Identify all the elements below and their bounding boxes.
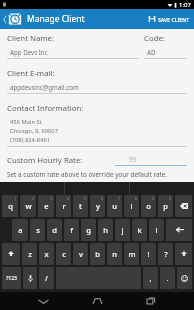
button[interactable]: b [90,243,105,265]
button[interactable]: Shift [2,243,20,265]
button[interactable]: d [47,219,62,241]
staticText: . [166,273,169,283]
staticText: 4 [67,196,70,201]
button[interactable]: ? [158,243,173,265]
button[interactable]: / [39,267,54,289]
staticText: Contact Information: [7,103,84,114]
button[interactable]: Shift [175,243,192,265]
staticText: 9 [152,196,155,201]
button[interactable]: z [22,243,37,265]
staticText: Custom Hourly Rate: [7,155,83,166]
staticText: (708) 824-8461 [10,136,51,144]
button[interactable]: v [73,243,88,265]
staticText: 5 [84,196,87,201]
button[interactable]: SAVE CLIENT [144,9,194,29]
button[interactable]: Voice input [23,267,37,289]
staticText: r [62,201,66,211]
button[interactable]: n [107,243,122,265]
staticText: c [62,249,66,259]
staticText: z [28,249,32,259]
staticText: f [70,225,73,235]
button[interactable]: a [12,219,28,241]
staticText: 2 [32,196,35,201]
button[interactable] [64,182,129,194]
button[interactable]: l [149,219,164,241]
staticText: g [86,225,91,235]
button[interactable]: f [64,219,79,241]
staticText: 99 [129,155,187,163]
staticText: i [130,201,133,211]
button[interactable]: i [124,195,139,217]
staticText: e [44,201,49,211]
staticText: Set a custom rate above to override your… [7,170,168,179]
staticText: 0 [169,196,172,201]
button[interactable]: t [73,195,88,217]
staticText: o [146,201,151,211]
button[interactable]: j [115,219,130,241]
staticText: Client E-mail: [7,68,55,79]
staticText: q [8,201,13,211]
button[interactable]: ?123 [2,267,21,289]
staticText: s [36,225,40,235]
staticText: 1:07 [179,1,191,9]
button[interactable]: k [132,219,147,241]
staticText: m [128,249,136,259]
staticText: Client Name: [7,33,55,44]
staticText: 1 [14,196,17,201]
button[interactable]: Enter [166,219,192,241]
staticText: ! [147,249,150,259]
button[interactable]: Recent apps [140,292,162,310]
staticText: 3 [50,196,53,201]
staticText: Code: [144,33,165,44]
button[interactable]: h [98,219,113,241]
staticText: AD [147,48,156,56]
staticText: y [96,201,100,211]
button[interactable]: Emoji [177,267,192,289]
staticText: a [18,225,23,235]
staticText: u [112,201,117,211]
button[interactable]: r [56,195,71,217]
button[interactable]: e [38,195,54,217]
staticText: k [137,225,142,235]
staticText: l [155,225,158,235]
staticText: x [44,249,49,259]
button[interactable]: Home [86,292,108,310]
staticText: d [52,225,57,235]
button[interactable]: o [141,195,156,217]
button[interactable]: p [158,195,173,217]
staticText: t [79,201,82,211]
button[interactable]: y [90,195,105,217]
staticText: 6 [101,196,104,201]
button[interactable]: g [81,219,96,241]
staticText: App Devs Inc [10,48,48,56]
staticText: p [163,201,168,211]
staticText: appdevsinc@gmail.com [10,83,79,91]
button[interactable]: ! [141,243,156,265]
staticText: ? [164,249,168,259]
button[interactable]: Backspace [175,195,192,217]
staticText: Chicago, IL 60607 [10,127,58,135]
button[interactable]: s [30,219,45,241]
button[interactable]: x [39,243,54,265]
button[interactable]: q [2,195,18,217]
button[interactable]: u [107,195,122,217]
staticText: n [112,249,117,259]
button[interactable]: w [20,195,36,217]
staticText: 8 [135,196,138,201]
button[interactable]: Back [32,292,54,310]
staticText: h [103,225,108,235]
button[interactable] [129,182,194,194]
staticText: j [121,225,124,235]
button[interactable]: . [160,267,175,289]
staticText: 456 Main St [10,118,42,126]
button[interactable]: m [124,243,139,265]
staticText: ?123 [6,275,17,282]
button[interactable]: , [143,267,158,289]
staticText: SAVE CLIENT [158,16,190,23]
staticText: , [149,273,152,283]
staticText: 7 [118,196,121,201]
button[interactable]: c [56,243,71,265]
button[interactable]: Navigate up [0,12,24,26]
